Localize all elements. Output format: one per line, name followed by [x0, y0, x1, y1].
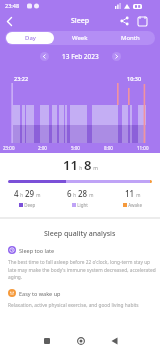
staticText: h — [78, 165, 84, 172]
staticText: Sleep — [71, 16, 90, 26]
staticText: 11 — [125, 188, 135, 199]
staticText: The best time to fall asleep before 22 o… — [8, 259, 156, 280]
button[interactable] — [112, 52, 121, 61]
button[interactable] — [105, 332, 123, 350]
staticText: 2:00 — [38, 145, 47, 151]
button[interactable] — [3, 14, 18, 29]
staticText: m — [88, 192, 94, 198]
staticText: Easy to wake up — [19, 290, 61, 297]
staticText: 10:30 — [127, 75, 142, 82]
staticText: 8:00 — [104, 145, 113, 151]
staticText: Awake — [127, 202, 143, 208]
staticText: 5:00 — [71, 145, 80, 151]
staticText: 11:00 — [137, 145, 149, 151]
staticText: 23:48 — [5, 2, 20, 9]
staticText: h — [19, 192, 25, 198]
staticText: 13 Feb 2023 — [62, 52, 99, 61]
staticText: m — [92, 165, 98, 172]
staticText: Deep — [23, 202, 36, 208]
staticText: 6 — [67, 188, 72, 199]
button[interactable] — [118, 14, 132, 28]
button[interactable]: Sleep too late — [8, 246, 160, 254]
staticText: 23:22 — [14, 75, 29, 82]
button[interactable] — [72, 332, 90, 350]
staticText: 8 — [84, 156, 92, 174]
button[interactable]: Easy to wake up — [8, 289, 160, 297]
button[interactable]: Week — [55, 31, 105, 45]
staticText: m — [35, 192, 41, 198]
button[interactable] — [135, 14, 149, 28]
staticText: 28 — [78, 188, 88, 199]
staticText: Day — [25, 34, 36, 42]
button[interactable]: Month — [105, 31, 155, 45]
staticText: Week — [72, 34, 88, 42]
staticText: 23:00 — [3, 145, 15, 151]
staticText: Month — [121, 34, 140, 42]
button[interactable] — [38, 332, 56, 350]
button[interactable]: Day — [6, 32, 54, 44]
staticText: 4 — [14, 188, 19, 199]
staticText: 11 — [63, 156, 78, 174]
staticText: Relaxation, active physical exercise, an… — [8, 302, 139, 309]
staticText: Light — [76, 202, 88, 208]
staticText: h — [72, 192, 78, 198]
staticText: m — [135, 192, 142, 198]
staticText: Sleep too late — [19, 247, 55, 254]
staticText: 29 — [25, 188, 35, 199]
button[interactable] — [40, 52, 49, 61]
staticText: Sleep quality analysis — [44, 229, 116, 239]
